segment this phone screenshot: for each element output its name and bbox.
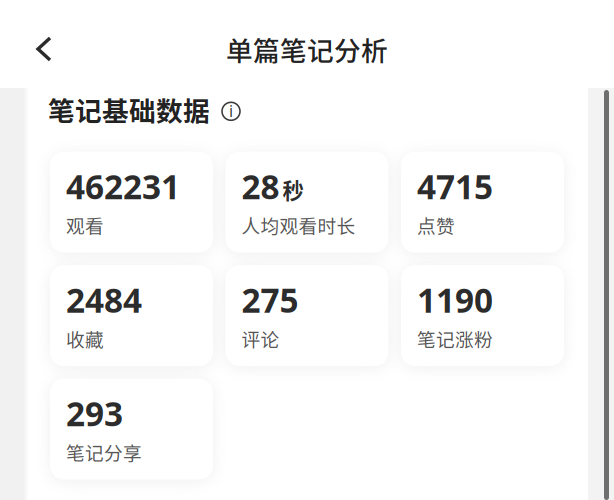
staticText: 275 <box>241 277 298 322</box>
staticText: 笔记基础数据 <box>48 90 210 129</box>
button[interactable]: 2484 <box>50 265 213 366</box>
staticText: 笔记涨粉 <box>417 325 493 352</box>
staticText: 观看 <box>66 212 104 239</box>
staticText: 293 <box>66 391 123 436</box>
staticText: 单篇笔记分析 <box>226 30 388 68</box>
staticText: 4715 <box>417 164 493 209</box>
staticText: 评论 <box>241 325 279 352</box>
button[interactable]: 28 <box>225 152 388 253</box>
staticText: 462231 <box>66 164 180 209</box>
staticText: 收藏 <box>66 325 104 352</box>
button[interactable]: Back <box>23 27 67 71</box>
staticText: 点赞 <box>417 212 455 239</box>
button[interactable]: 462231 <box>50 152 213 253</box>
staticText: 1190 <box>417 277 493 322</box>
button[interactable]: 1190 <box>401 265 564 366</box>
button[interactable]: 数据说明 <box>221 101 241 121</box>
staticText: 笔记分享 <box>66 439 142 466</box>
button[interactable]: 4715 <box>401 152 564 253</box>
staticText: 人均观看时长 <box>241 212 355 239</box>
staticText: 秒 <box>282 174 303 205</box>
staticText: i <box>229 100 233 122</box>
staticText: 28 <box>241 164 279 209</box>
staticText: 2484 <box>66 277 142 322</box>
button[interactable]: 275 <box>225 265 388 366</box>
button[interactable]: 293 <box>50 379 213 480</box>
